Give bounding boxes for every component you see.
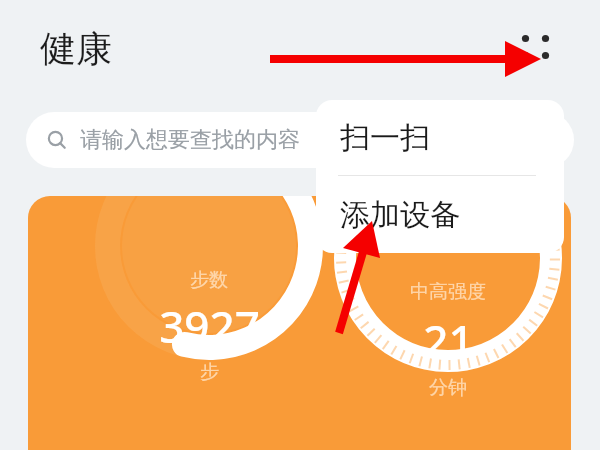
staticText: 21	[423, 310, 474, 370]
staticText: 分钟	[429, 376, 467, 400]
staticText: 3927	[159, 296, 260, 356]
button[interactable]: 添加设备	[316, 176, 564, 253]
staticText: 扫一扫	[340, 119, 430, 157]
button[interactable]: More options	[512, 22, 558, 68]
button[interactable]: 请输入想要查找的内容	[26, 112, 574, 168]
staticText: 添加设备	[340, 196, 460, 234]
staticText: 步	[200, 360, 219, 384]
staticText: 中高强度	[410, 280, 486, 304]
staticText: 步数	[190, 268, 228, 292]
button[interactable]: 健康	[40, 26, 112, 71]
button[interactable]: 步数	[28, 196, 571, 450]
staticText: 请输入想要查找的内容	[80, 126, 300, 154]
staticText: 健康	[40, 26, 112, 71]
button[interactable]: 扫一扫	[316, 100, 564, 175]
